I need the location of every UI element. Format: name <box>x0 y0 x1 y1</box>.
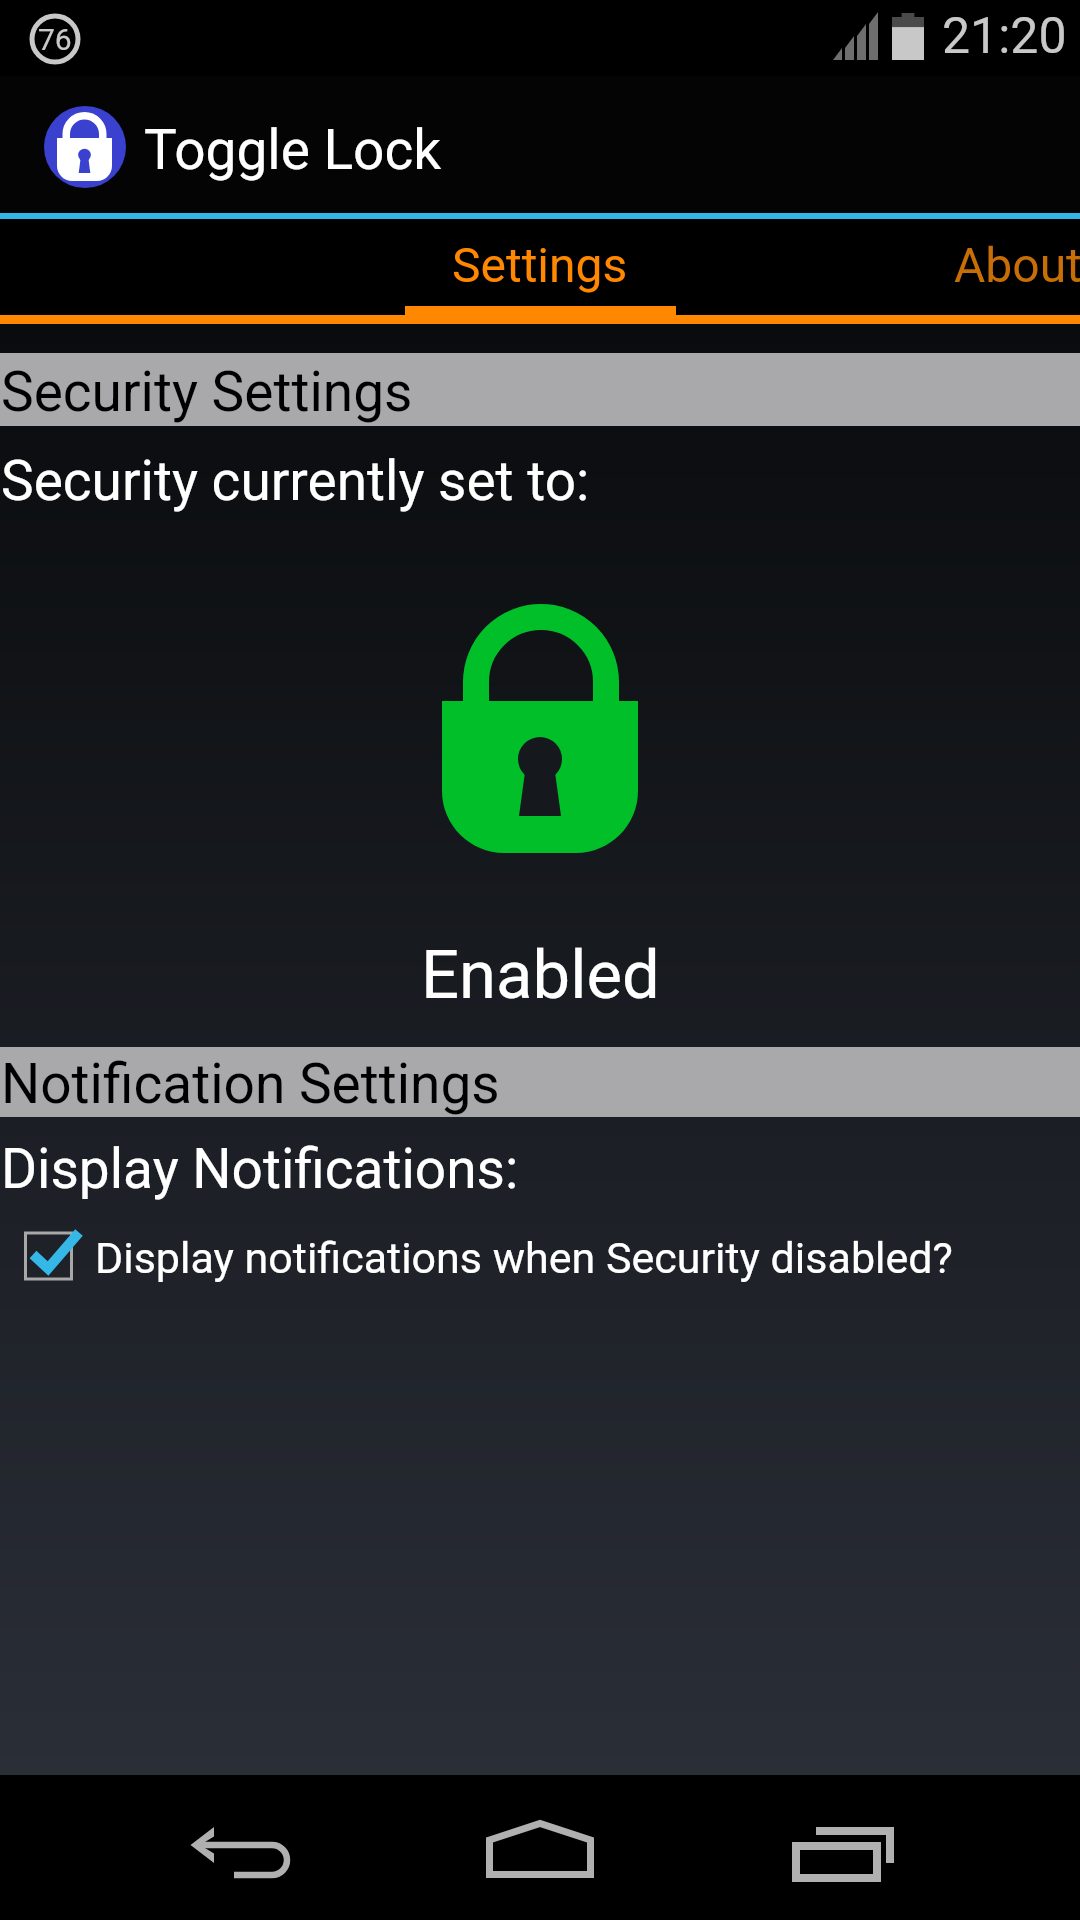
button[interactable]: Back <box>0 1775 360 1920</box>
button[interactable]: Recent apps <box>720 1775 1080 1920</box>
staticText: About <box>954 237 1080 293</box>
staticText: 21:20 <box>942 7 1067 66</box>
staticText: Notification Settings <box>1 1052 500 1116</box>
staticText: Settings <box>452 237 628 293</box>
button[interactable]: Display notifications when Security disa… <box>0 1217 1080 1299</box>
staticText: Display notifications when Security disa… <box>95 1233 953 1283</box>
staticText: Security currently set to: <box>1 449 590 513</box>
staticText: Display Notifications: <box>1 1137 519 1201</box>
staticText: Security Settings <box>1 360 413 424</box>
button[interactable]: Settings <box>270 219 810 324</box>
staticText: Enabled <box>421 936 660 1015</box>
staticText: 76 <box>38 22 72 57</box>
staticText: Toggle Lock <box>144 118 442 182</box>
button[interactable]: About <box>810 219 1080 324</box>
button[interactable]: Home <box>360 1775 720 1920</box>
